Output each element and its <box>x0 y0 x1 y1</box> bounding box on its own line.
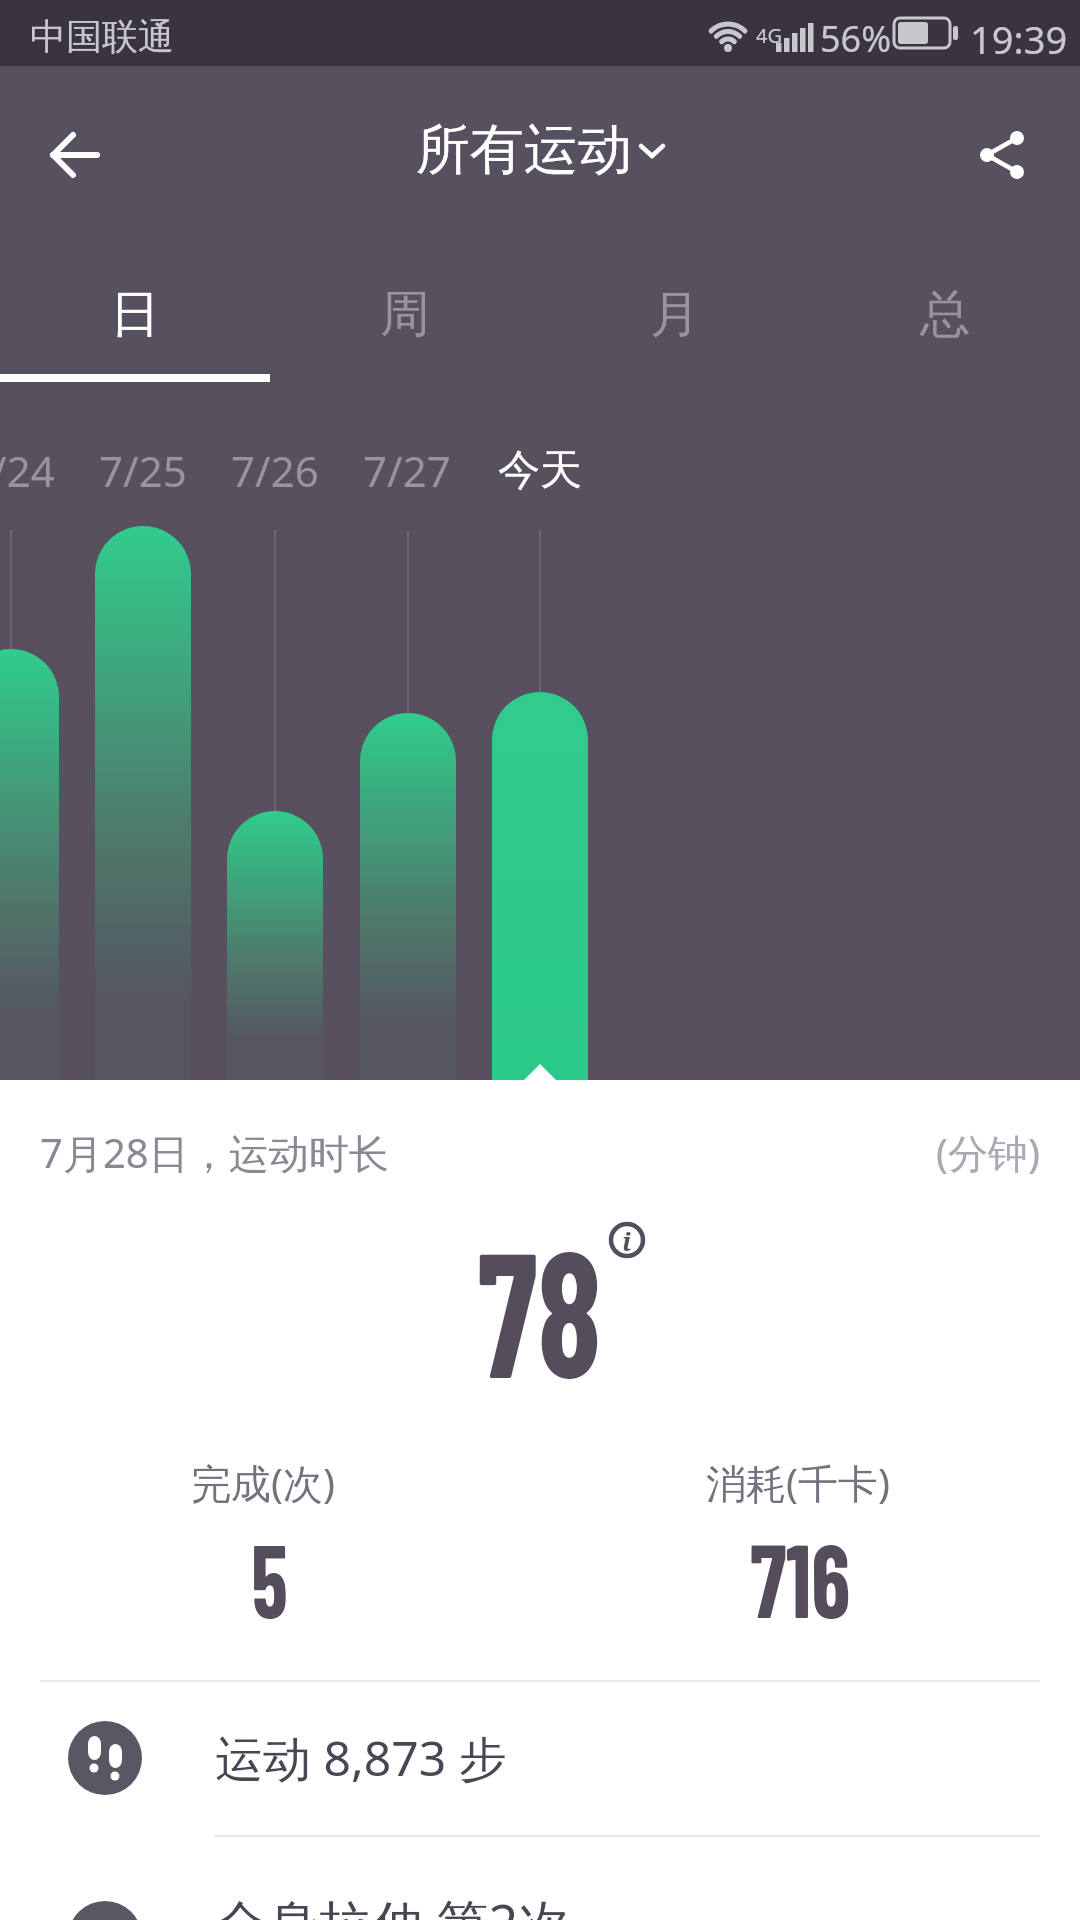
staticText: 716 <box>750 1515 851 1625</box>
staticText: 5 <box>252 1515 288 1625</box>
button[interactable]: 运动 8,873 步 <box>0 1682 1080 1834</box>
button[interactable]: 周 <box>270 259 540 369</box>
button[interactable]: 月 <box>540 259 810 369</box>
button[interactable] <box>958 110 1048 200</box>
staticText: 月 <box>650 283 700 346</box>
staticText: 消耗(千卡) <box>706 1455 890 1510</box>
staticText: 总 <box>920 283 970 346</box>
staticText: 所有运动 <box>416 116 632 184</box>
staticText: (分钟) <box>936 1125 1040 1180</box>
button[interactable]: 总 <box>810 259 1080 369</box>
staticText: 7/27 <box>363 442 451 499</box>
staticText: 7月28日，运动时长 <box>40 1125 389 1180</box>
staticText: 今天 <box>498 444 582 497</box>
button[interactable]: i <box>603 1216 651 1264</box>
staticText: 运动 8,873 步 <box>215 1725 507 1791</box>
staticText: 56% <box>820 14 892 63</box>
staticText: 19:39 <box>970 13 1068 65</box>
staticText: 7/26 <box>231 442 319 499</box>
staticText: 全身拉伸 第2次 <box>215 1887 571 1920</box>
button[interactable]: 全身拉伸 第2次 <box>0 1837 1080 1920</box>
staticText: 完成(次) <box>191 1455 335 1510</box>
staticText: 周 <box>380 283 430 346</box>
staticText: 日 <box>110 283 160 346</box>
staticText: 中国联通 <box>30 14 174 59</box>
staticText: 4G <box>756 22 782 49</box>
staticText: i <box>622 1223 632 1258</box>
staticText: 7/25 <box>99 442 187 499</box>
button[interactable] <box>30 110 120 200</box>
staticText: 7/24 <box>0 442 55 499</box>
staticText: 78 <box>478 1202 602 1402</box>
button[interactable]: 日 <box>0 259 270 369</box>
button[interactable]: 所有运动 <box>364 110 684 190</box>
